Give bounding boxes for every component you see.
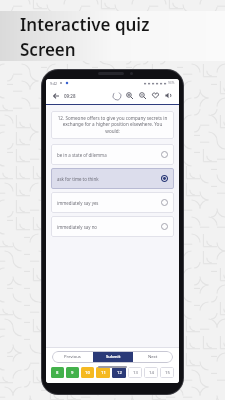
button[interactable]: 8 [51,367,64,378]
staticText: 9 [71,370,74,376]
button[interactable]: 15 [160,367,174,378]
staticText: 12. Someone offers to give you company s… [56,115,169,135]
staticText: 93% [168,81,175,85]
staticText: immediately say no [57,224,98,230]
staticText: Interactive quiz [20,13,150,36]
button[interactable]: Zoom in [123,89,136,102]
staticText: 09:28 [64,93,76,99]
staticText: Previous [64,354,81,360]
button[interactable]: ask for time to think [51,168,174,189]
button[interactable]: Back [50,90,62,102]
button[interactable]: 14 [144,367,158,378]
staticText: 8 [56,370,59,376]
staticText: Submit [106,354,121,360]
button[interactable]: be in a state of dilemma [51,144,174,165]
staticText: 11 [101,370,106,376]
button[interactable]: Next [133,351,173,363]
button[interactable]: 11 [96,367,110,378]
staticText: 10 [85,370,90,376]
staticText: ask for time to think [57,176,99,182]
staticText: be in a state of dilemma [57,152,107,158]
button[interactable]: Favourite [149,89,162,102]
staticText: Screen [20,38,76,61]
staticText: immediately say yes [57,200,99,206]
staticText: 15 [165,370,170,376]
button[interactable]: immediately say no [51,216,174,237]
button[interactable]: Zoom out [136,89,149,102]
button[interactable]: Sound [162,89,175,102]
staticText: 13 [133,370,138,376]
staticText: Next [148,354,158,360]
button[interactable]: 9 [66,367,79,378]
button[interactable]: 10 [81,367,94,378]
button[interactable]: 13 [128,367,142,378]
button[interactable]: immediately say yes [51,192,174,213]
staticText: 14 [149,370,154,376]
button[interactable]: 12 [112,367,126,378]
button[interactable]: Previous [52,351,93,363]
button[interactable]: Timer [111,90,123,102]
staticText: 9:42 [50,81,57,86]
staticText: 12 [117,370,122,376]
button[interactable]: Submit [93,351,133,363]
